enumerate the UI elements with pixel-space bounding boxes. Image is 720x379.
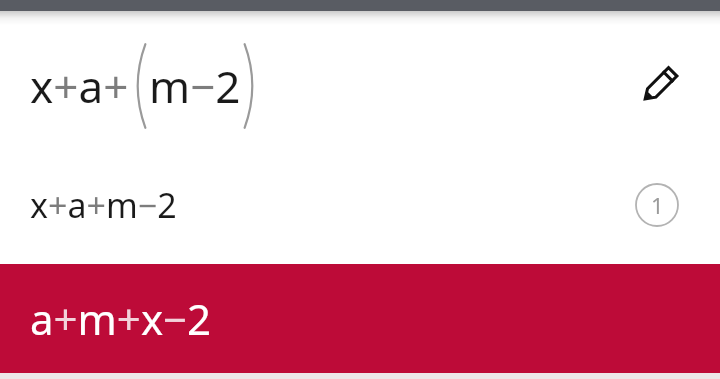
button[interactable]: x+a+m−2: [0, 150, 720, 264]
staticText: a+m+x−2: [30, 290, 212, 347]
button[interactable]: x+a+: [0, 25, 720, 150]
staticText: m−2: [149, 56, 241, 116]
staticText: x+a+m−2: [30, 182, 177, 228]
button[interactable]: Edit: [634, 54, 690, 110]
button[interactable]: a+m+x−2: [0, 264, 720, 373]
staticText: x+a+: [30, 56, 129, 116]
staticText: 1: [651, 190, 664, 220]
